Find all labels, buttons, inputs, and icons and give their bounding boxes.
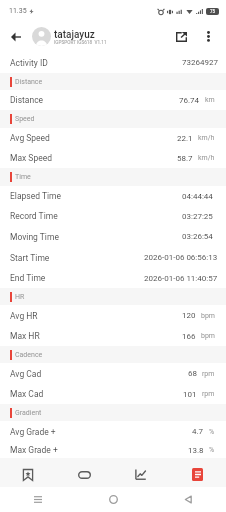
staticText: bpm bbox=[201, 312, 215, 320]
staticText: 76.74 bbox=[179, 96, 200, 105]
staticText: Avg HR bbox=[10, 311, 38, 321]
staticText: Activity ID bbox=[10, 58, 48, 68]
button[interactable]: Distance bbox=[0, 90, 226, 110]
staticText: km/h bbox=[198, 154, 215, 162]
button[interactable]: Routes bbox=[56, 458, 112, 487]
button[interactable]: End Time bbox=[0, 268, 226, 288]
staticText: 04:44:44 bbox=[182, 192, 213, 201]
staticText: Distance bbox=[10, 95, 44, 105]
staticText: HR bbox=[15, 293, 25, 301]
button[interactable]: Max HR bbox=[0, 326, 226, 346]
staticText: 2026-01-06 06:56:13 bbox=[144, 253, 218, 262]
staticText: Max Grade + bbox=[10, 445, 58, 455]
staticText: rpm bbox=[202, 370, 215, 378]
staticText: 4.7 bbox=[192, 427, 204, 436]
staticText: 11.35 bbox=[9, 7, 27, 15]
staticText: IGPSPORT IGS618 V1.11 bbox=[54, 40, 107, 46]
button[interactable]: Statistics bbox=[112, 458, 169, 487]
staticText: bpm bbox=[201, 332, 215, 340]
staticText: rpm bbox=[202, 390, 215, 398]
staticText: Record Time bbox=[10, 211, 58, 221]
staticText: Time bbox=[15, 173, 31, 181]
button[interactable]: Share bbox=[170, 25, 193, 48]
staticText: tatajayuz bbox=[54, 29, 95, 41]
staticText: Max Cad bbox=[10, 389, 44, 399]
button[interactable]: Record Time bbox=[0, 206, 226, 226]
staticText: 120 bbox=[182, 311, 196, 320]
staticText: Avg Speed bbox=[10, 133, 50, 143]
button[interactable]: Home bbox=[76, 487, 151, 512]
staticText: Cadence bbox=[15, 351, 43, 359]
button[interactable]: Back bbox=[5, 26, 27, 48]
staticText: 75 bbox=[210, 9, 216, 14]
staticText: Max HR bbox=[10, 331, 40, 341]
staticText: % bbox=[209, 428, 215, 436]
staticText: Max Speed bbox=[10, 153, 52, 163]
staticText: Distance bbox=[15, 78, 43, 86]
staticText: 13.8 bbox=[188, 446, 204, 455]
button[interactable]: Avg Cad bbox=[0, 363, 226, 384]
staticText: 58.7 bbox=[177, 154, 193, 163]
staticText: 101 bbox=[183, 390, 197, 399]
staticText: 22.1 bbox=[177, 134, 193, 143]
button[interactable]: Recent apps bbox=[0, 487, 76, 512]
button[interactable]: Moving Time bbox=[0, 226, 226, 247]
button[interactable]: Start Time bbox=[0, 247, 226, 268]
staticText: 03:27:25 bbox=[182, 212, 213, 221]
button[interactable]: Max Speed bbox=[0, 148, 226, 168]
staticText: 166 bbox=[182, 332, 196, 341]
staticText: % bbox=[209, 446, 215, 454]
staticText: Speed bbox=[15, 115, 35, 123]
button[interactable]: Activities bbox=[169, 458, 226, 487]
staticText: 68 bbox=[188, 369, 197, 378]
button[interactable]: Back bbox=[151, 487, 226, 512]
staticText: Avg Grade + bbox=[10, 427, 56, 437]
staticText: Gradient bbox=[15, 409, 42, 417]
staticText: 73264927 bbox=[182, 58, 218, 67]
staticText: Avg Cad bbox=[10, 369, 42, 379]
staticText: Moving Time bbox=[10, 232, 59, 242]
button[interactable]: Avg Speed bbox=[0, 128, 226, 148]
staticText: Elapsed Time bbox=[10, 191, 62, 201]
button[interactable]: Avg HR bbox=[0, 305, 226, 326]
button[interactable]: Max Grade + bbox=[0, 442, 226, 458]
staticText: km/h bbox=[198, 134, 215, 142]
staticText: Start Time bbox=[10, 253, 50, 263]
button[interactable]: More options bbox=[197, 25, 219, 47]
button[interactable]: Avg Grade + bbox=[0, 421, 226, 442]
button[interactable]: Max Cad bbox=[0, 384, 226, 404]
staticText: 03:26:54 bbox=[182, 232, 213, 241]
button[interactable]: Saved bbox=[0, 458, 56, 487]
button[interactable]: Activity ID bbox=[0, 52, 226, 73]
button[interactable]: Elapsed Time bbox=[0, 186, 226, 206]
staticText: End Time bbox=[10, 273, 46, 283]
staticText: km bbox=[205, 96, 215, 104]
staticText: 2026-01-06 11:40:57 bbox=[144, 274, 218, 283]
